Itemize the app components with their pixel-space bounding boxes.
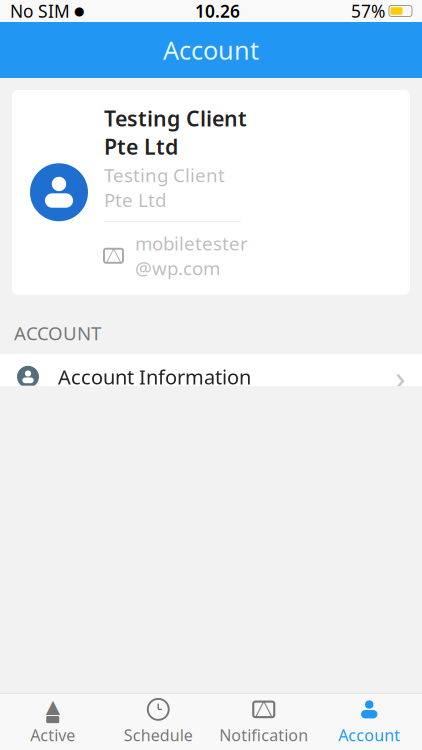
staticText: 57% xyxy=(351,0,385,22)
button[interactable]: Account Information xyxy=(0,354,422,400)
staticText: Notification xyxy=(219,724,308,746)
staticText: › xyxy=(395,354,406,400)
staticText: No SIM xyxy=(10,0,70,22)
staticText: Account xyxy=(163,33,259,67)
button[interactable]: Schedule xyxy=(105,694,211,750)
staticText: ACCOUNT xyxy=(14,320,101,345)
staticText: mobiletester@wp.com xyxy=(135,231,248,280)
staticText: Active xyxy=(30,724,75,746)
staticText: ▲ xyxy=(46,696,60,717)
button[interactable]: Account xyxy=(316,694,422,750)
staticText: Schedule xyxy=(124,724,193,746)
staticText: ╱╲ xyxy=(106,249,120,262)
staticText: ● xyxy=(70,4,84,18)
button[interactable]: ╱╲ xyxy=(211,694,316,750)
staticText: 10.26 xyxy=(195,0,240,22)
staticText: Testing Client Pte Ltd xyxy=(104,104,247,161)
staticText: ╱╲ xyxy=(256,702,272,717)
button[interactable]: ▲ xyxy=(0,694,105,750)
staticText: Account xyxy=(338,724,400,746)
staticText: Account Information xyxy=(58,363,251,390)
staticText: Testing Client Pte Ltd xyxy=(104,163,225,212)
